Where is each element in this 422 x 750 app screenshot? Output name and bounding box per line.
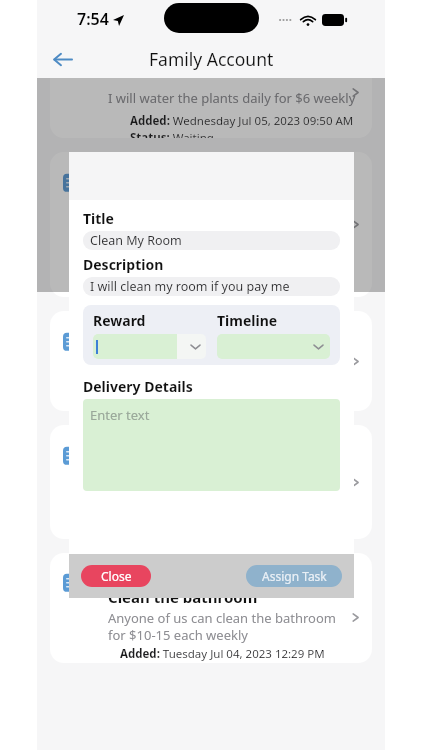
button[interactable]: Joy bbox=[50, 553, 372, 663]
button[interactable]: Clean My Room bbox=[83, 231, 340, 250]
staticText: Timeline bbox=[217, 311, 278, 330]
staticText: Clean the bathroom bbox=[108, 587, 258, 607]
button[interactable]: I will water the plants daily for $6 wee… bbox=[50, 78, 372, 138]
button[interactable] bbox=[50, 311, 372, 411]
staticText: Delivery Details bbox=[83, 377, 193, 396]
staticText: Clean My Room bbox=[90, 232, 182, 249]
staticText: Enter text bbox=[90, 406, 150, 424]
button[interactable]: I will clean my room if you pay me bbox=[83, 277, 340, 296]
button[interactable]: Assign Task bbox=[246, 565, 342, 587]
staticText: 7:54 bbox=[77, 8, 109, 30]
staticText: Joy bbox=[108, 565, 130, 584]
staticText: Anyone of us can clean the bathroom for … bbox=[108, 609, 338, 644]
staticText: Title bbox=[83, 209, 114, 228]
staticText: Added: Tuesday Jul 04, 2023 12:29 PM bbox=[120, 646, 325, 662]
button[interactable] bbox=[217, 334, 330, 359]
staticText: Assign Task bbox=[262, 568, 327, 584]
staticText: I will clean my room if you pay me bbox=[90, 278, 290, 295]
staticText: Status: Waiting bbox=[130, 130, 214, 138]
staticText: Description bbox=[83, 255, 164, 274]
staticText: I will water the plants daily for $6 wee… bbox=[108, 89, 356, 107]
staticText: Added: Wednesday Jul 05, 2023 09:50 AM bbox=[130, 113, 354, 129]
button[interactable] bbox=[50, 152, 372, 297]
button[interactable]: Close bbox=[81, 565, 151, 587]
staticText: Family Account bbox=[149, 47, 274, 71]
staticText: Added: Tuesday Jul 04, 2023 12:40 PM bbox=[130, 481, 335, 497]
button[interactable]: Added: Tuesday Jul 04, 2023 12:40 PM bbox=[50, 425, 372, 539]
button[interactable]: Enter text bbox=[83, 399, 340, 491]
button[interactable] bbox=[93, 334, 206, 359]
staticText: Close bbox=[101, 568, 132, 584]
button[interactable]: Back bbox=[43, 40, 81, 78]
staticText: Reward bbox=[93, 311, 146, 330]
